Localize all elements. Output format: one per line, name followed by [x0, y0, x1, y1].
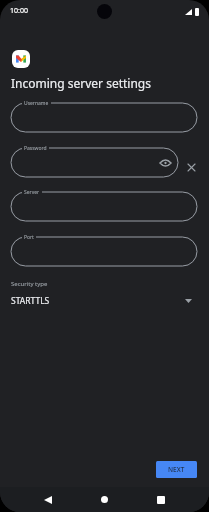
button[interactable]: Recent apps	[150, 489, 171, 510]
button[interactable]	[11, 103, 197, 132]
button[interactable]: NEXT	[156, 461, 197, 478]
button[interactable]: Back	[37, 489, 58, 510]
staticText: Password	[24, 145, 47, 152]
staticText: STARTTLS	[11, 295, 50, 307]
staticText: Username	[24, 100, 49, 107]
button[interactable]: Clear error	[185, 161, 197, 173]
staticText: 10:00	[10, 6, 28, 16]
staticText: Port	[24, 234, 34, 241]
staticText: Security type	[11, 280, 48, 288]
button[interactable]	[11, 237, 197, 266]
button[interactable]: Show password	[158, 156, 172, 170]
staticText: Incoming server settings	[11, 75, 151, 91]
button[interactable]: STARTTLS	[0, 292, 209, 309]
staticText: Server	[24, 189, 40, 196]
button[interactable]: Show password	[11, 148, 178, 177]
button[interactable]	[11, 192, 197, 221]
staticText: NEXT	[168, 465, 185, 474]
button[interactable]: Home	[94, 489, 115, 510]
